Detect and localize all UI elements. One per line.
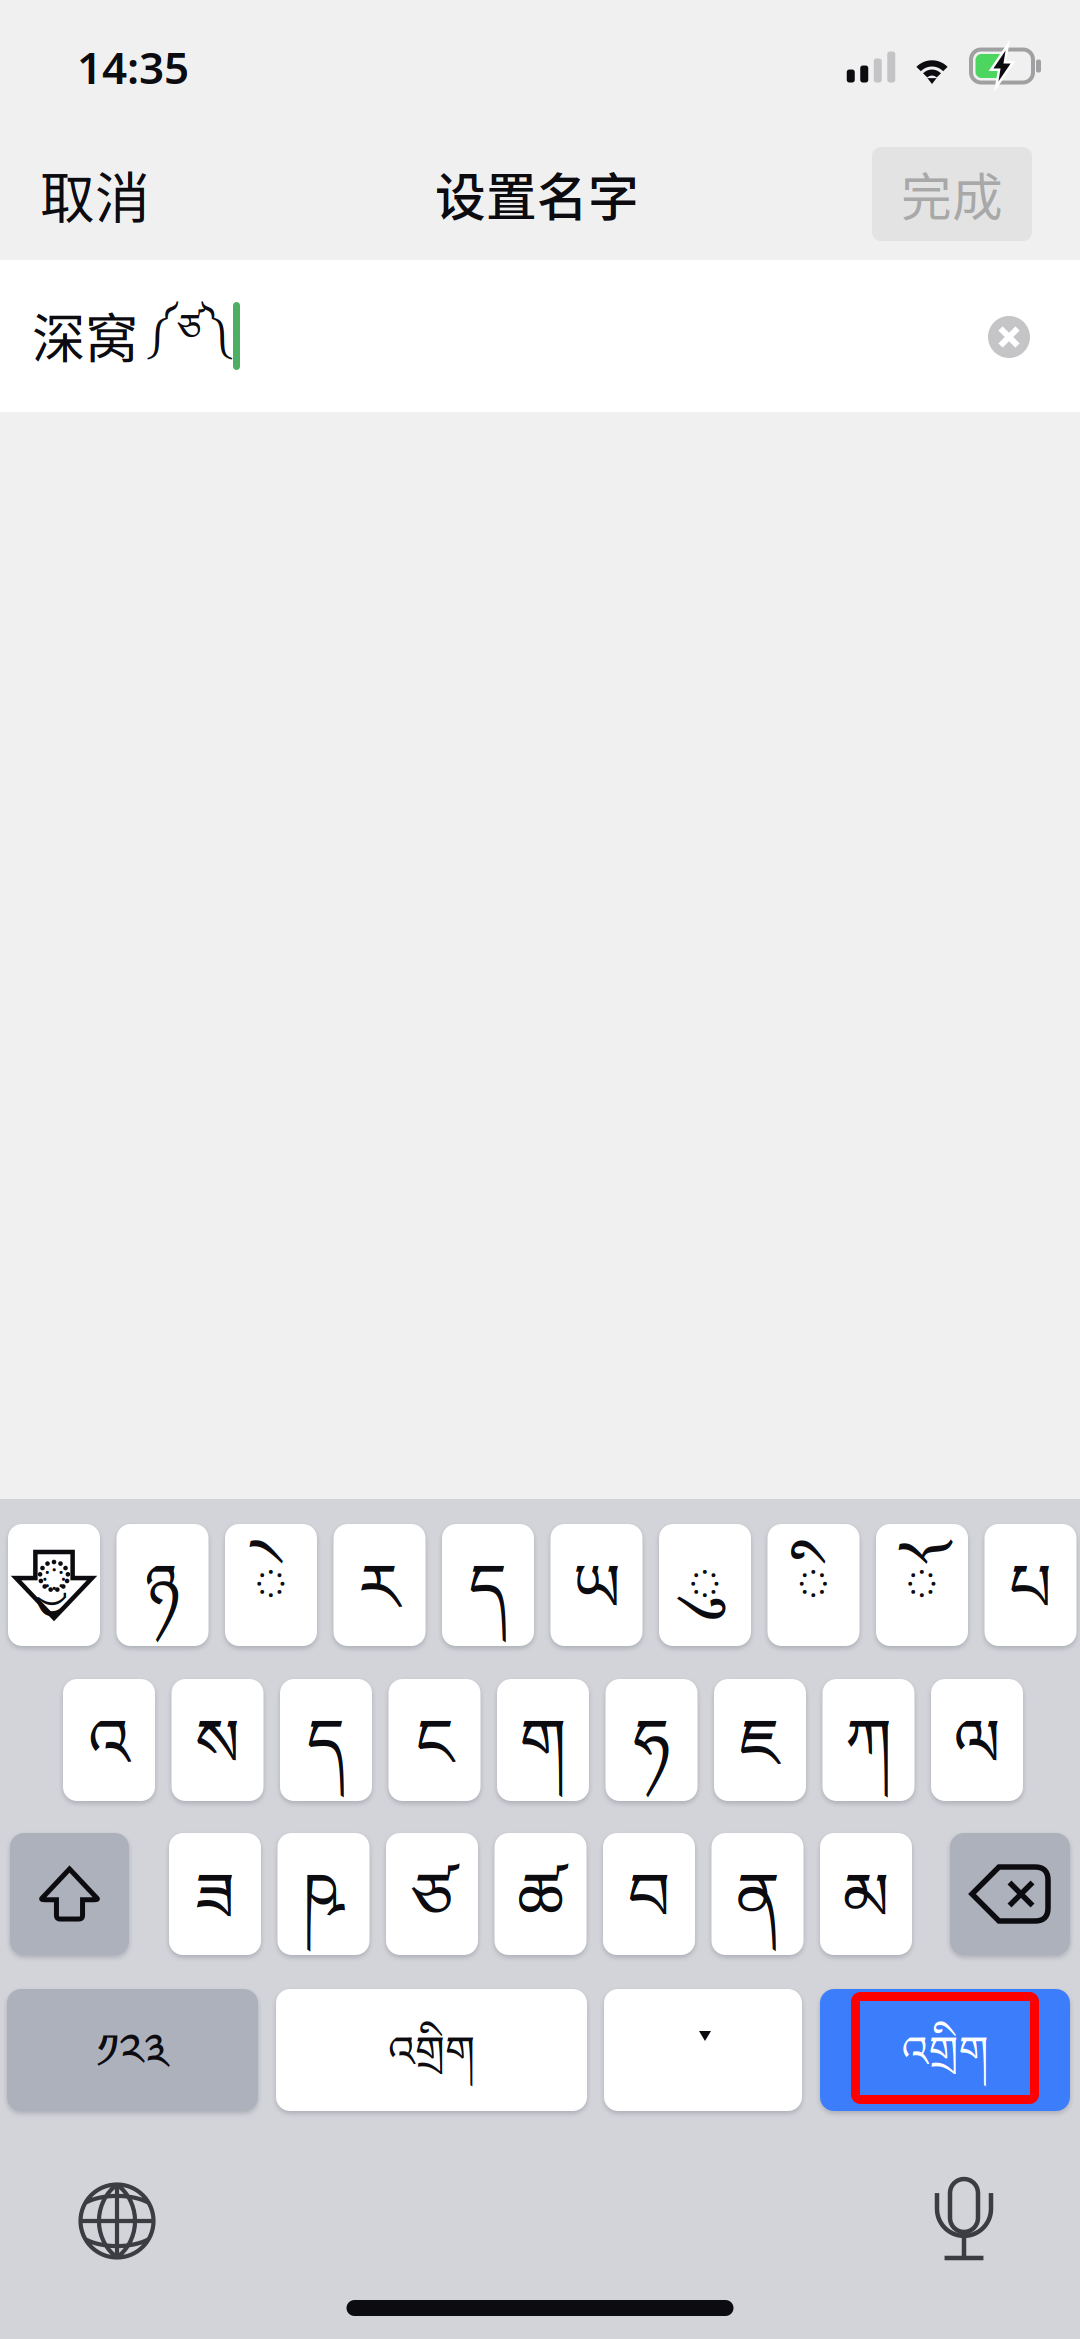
- staticText: ང: [415, 1668, 453, 1856]
- staticText: འགྲིག: [901, 2004, 988, 2124]
- button[interactable]: ཡ: [550, 1524, 642, 1646]
- button[interactable]: འགྲིག: [820, 1989, 1070, 2111]
- button[interactable]: ཉ: [116, 1524, 208, 1646]
- button[interactable]: ཇ: [714, 1679, 806, 1801]
- staticText: ས: [195, 1668, 240, 1856]
- staticText: བ: [627, 1822, 670, 2010]
- button[interactable]: Candidates: [604, 1989, 802, 2111]
- button[interactable]: ེ: [225, 1524, 317, 1646]
- button[interactable]: Dictation: [911, 2155, 1017, 2283]
- button[interactable]: ཙ: [386, 1833, 478, 1955]
- button[interactable]: འགྲིག: [276, 1989, 587, 2111]
- staticText: ེ: [252, 1513, 289, 1701]
- staticText: 完成: [901, 157, 1003, 231]
- staticText: ད: [468, 1513, 507, 1701]
- staticText: ར: [358, 1513, 400, 1701]
- button[interactable]: ར: [333, 1524, 425, 1646]
- staticText: ི: [795, 1513, 832, 1701]
- button[interactable]: ས: [171, 1679, 263, 1801]
- button[interactable]: Next keyboard: [56, 2160, 177, 2281]
- staticText: ཉ: [144, 1513, 180, 1701]
- staticText: ག: [519, 1668, 566, 1856]
- staticText: འགྲིག: [388, 2004, 475, 2124]
- staticText: ཙ: [411, 1822, 453, 2010]
- button[interactable]: ཥ: [277, 1833, 369, 1955]
- button[interactable]: Shift: [10, 1833, 129, 1955]
- staticText: 深窝: [32, 296, 138, 374]
- button[interactable]: ི: [767, 1524, 859, 1646]
- button[interactable]: ཟ: [169, 1833, 261, 1955]
- staticText: ཟ: [195, 1822, 235, 2010]
- staticText: ོ: [903, 1513, 940, 1701]
- staticText: 设置名字: [435, 157, 639, 231]
- staticText: ཧ: [633, 1668, 670, 1856]
- staticText: ལ: [953, 1668, 1000, 1856]
- staticText: ན: [735, 1822, 779, 2010]
- button[interactable]: ༡༢༣: [7, 1989, 258, 2111]
- button[interactable]: Delete: [950, 1833, 1070, 1955]
- staticText: འ: [88, 1668, 130, 1856]
- button[interactable]: 完成: [872, 147, 1032, 241]
- staticText: ཚ: [517, 1822, 564, 2010]
- button[interactable]: ཀ: [822, 1679, 914, 1801]
- staticText: ཥ: [303, 1822, 344, 2010]
- button[interactable]: Clear text: [966, 294, 1052, 380]
- button[interactable]: ོ: [876, 1524, 968, 1646]
- staticText: ད: [306, 1668, 345, 1856]
- button[interactable]: ཧ: [605, 1679, 697, 1801]
- button[interactable]: ད: [442, 1524, 534, 1646]
- button[interactable]: ཚ: [494, 1833, 586, 1955]
- staticText: 14:35: [77, 38, 189, 96]
- staticText: ༡༢༣: [96, 1997, 169, 2132]
- button[interactable]: Switch script: [8, 1524, 100, 1646]
- button[interactable]: 取消: [20, 142, 170, 246]
- staticText: ུ: [686, 1513, 723, 1701]
- button[interactable]: མ: [820, 1833, 912, 1955]
- button[interactable]: ག: [497, 1679, 589, 1801]
- staticText: ྱ: [39, 1523, 68, 1673]
- button[interactable]: ན: [711, 1833, 803, 1955]
- staticText: ༼ཙ༽: [146, 285, 230, 393]
- button[interactable]: ུ: [659, 1524, 751, 1646]
- button[interactable]: ང: [388, 1679, 480, 1801]
- staticText: པ: [1009, 1513, 1052, 1701]
- staticText: ཇ: [739, 1668, 780, 1856]
- staticText: 取消: [40, 154, 150, 234]
- button[interactable]: ལ: [931, 1679, 1023, 1801]
- staticText: ཀ: [845, 1668, 892, 1856]
- button[interactable]: པ: [984, 1524, 1076, 1646]
- staticText: མ: [842, 1822, 889, 2010]
- button[interactable]: འ: [63, 1679, 155, 1801]
- staticText: ཡ: [572, 1513, 620, 1701]
- button[interactable]: བ: [603, 1833, 695, 1955]
- button[interactable]: ད: [280, 1679, 372, 1801]
